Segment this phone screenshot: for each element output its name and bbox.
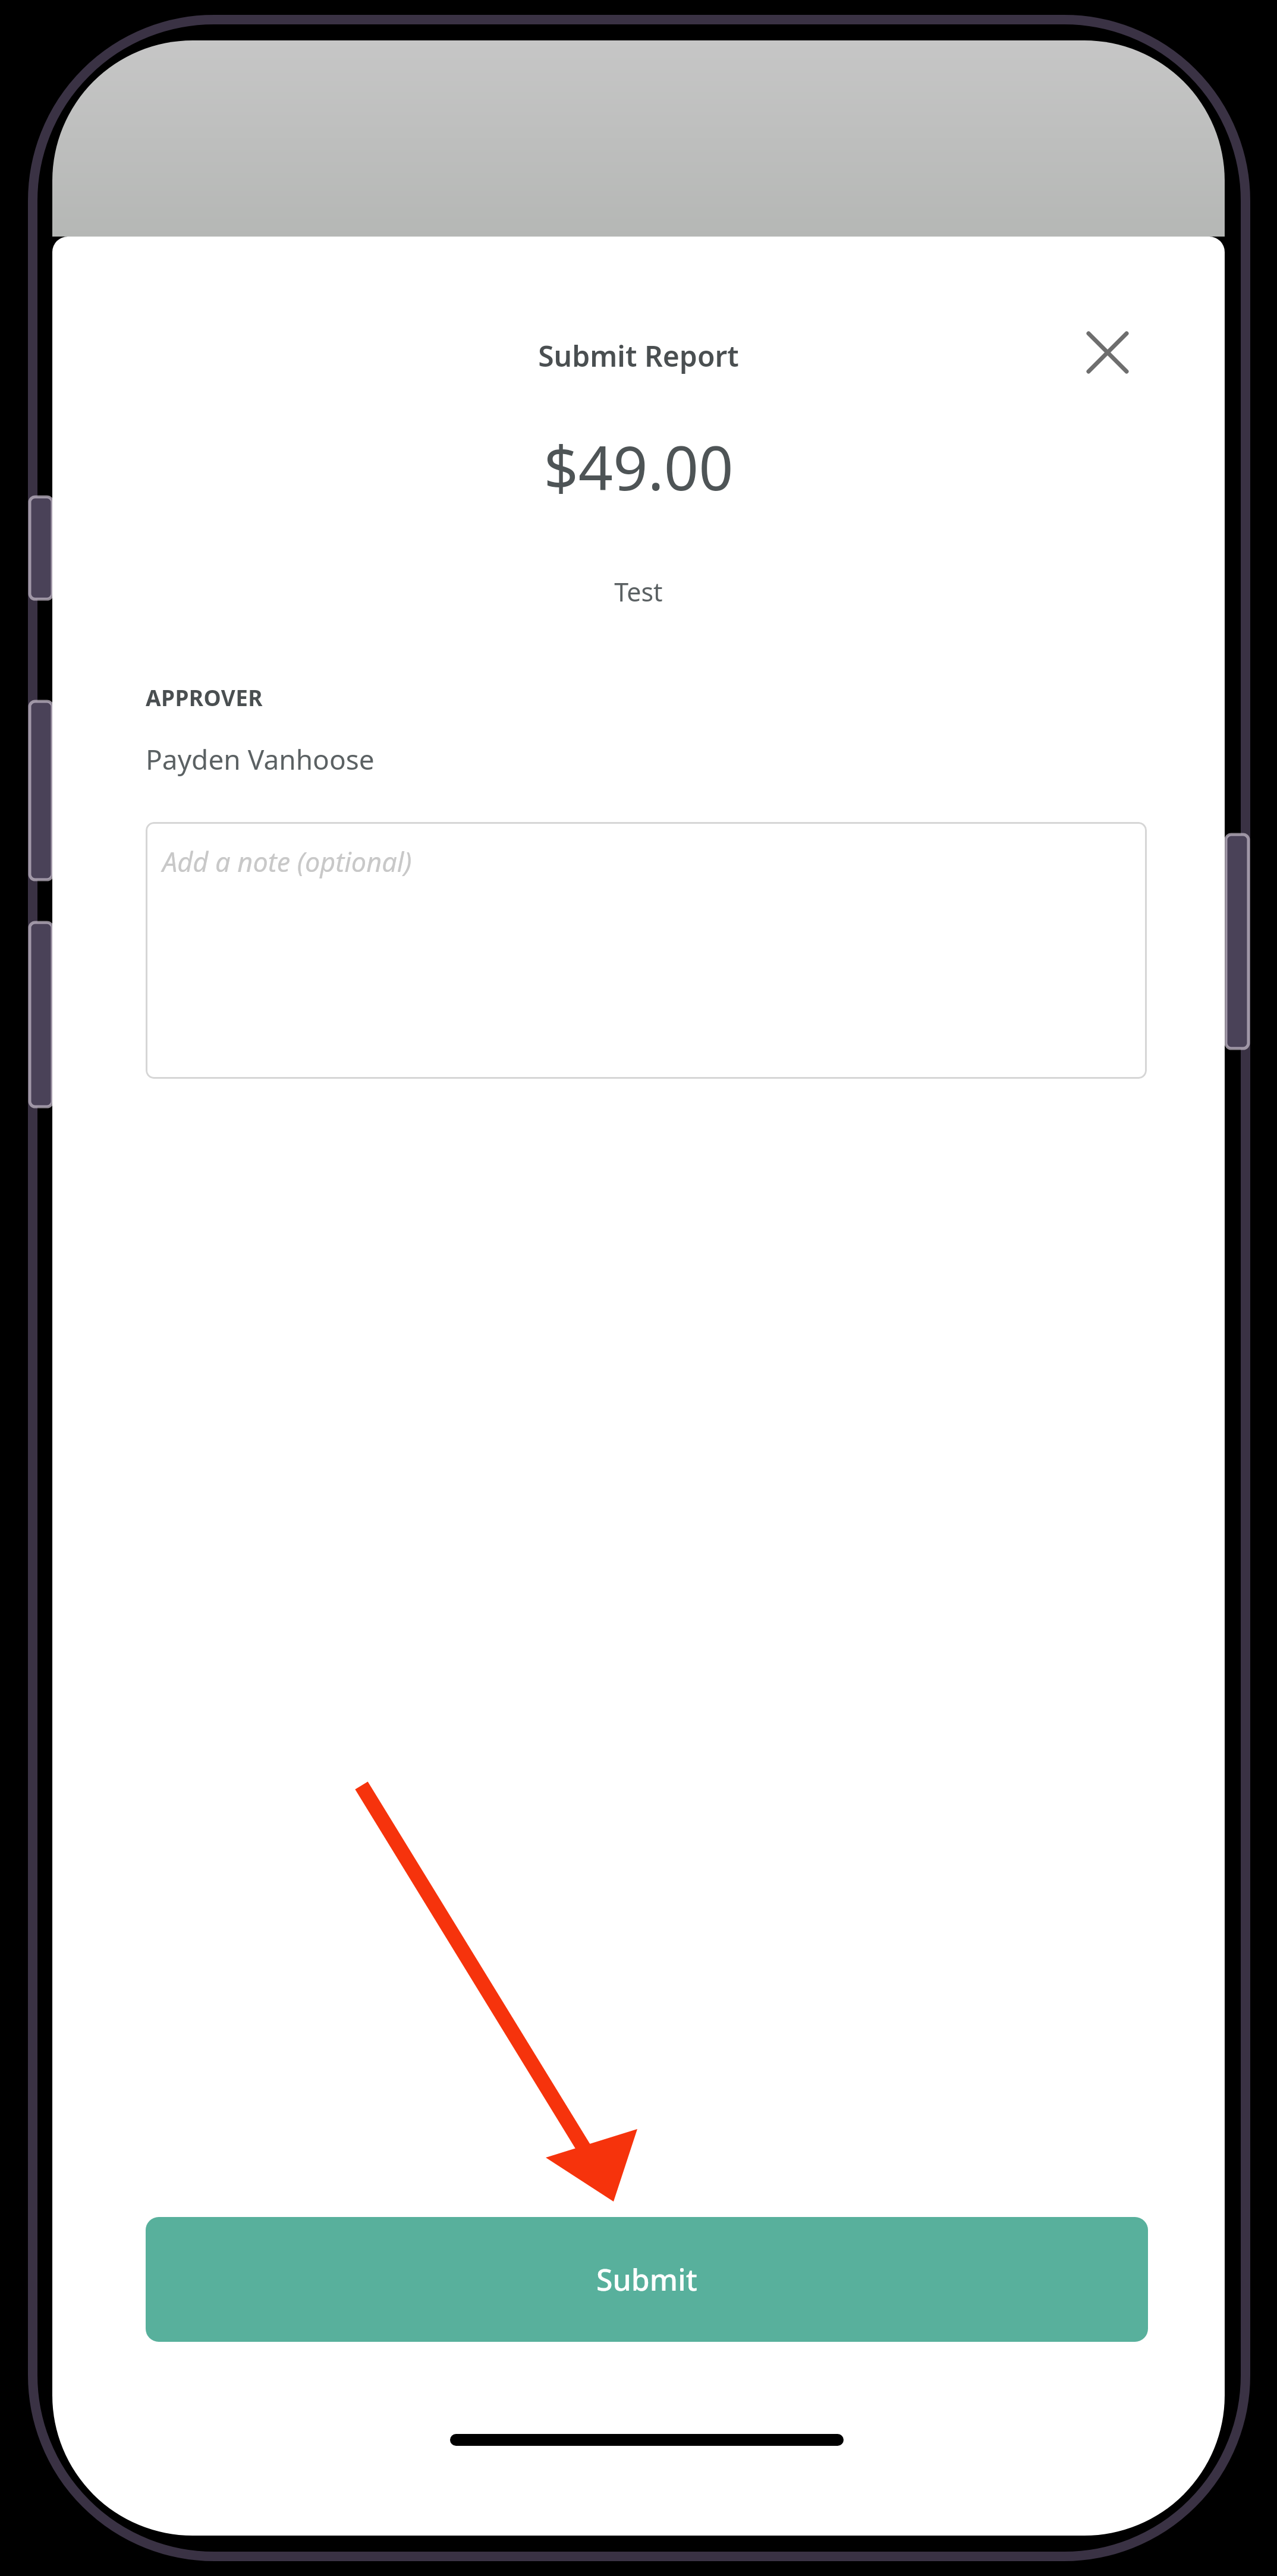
- button[interactable]: Submit: [146, 2217, 1148, 2342]
- staticText: Payden Vanhoose: [146, 741, 375, 778]
- staticText: Add a note (optional): [162, 843, 412, 880]
- button[interactable]: Add a note (optional): [146, 822, 1147, 1079]
- staticText: Test: [52, 574, 1225, 609]
- staticText: $49.00: [52, 426, 1225, 508]
- staticText: APPROVER: [146, 682, 263, 712]
- button[interactable]: Close: [1063, 308, 1152, 397]
- staticText: Submit Report: [52, 336, 1225, 375]
- staticText: Submit: [596, 2259, 697, 2300]
